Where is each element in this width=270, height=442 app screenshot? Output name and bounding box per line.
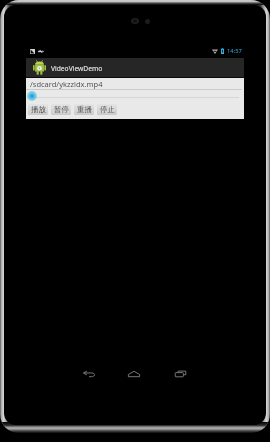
button[interactable]: 暂停 — [51, 104, 71, 115]
staticText: 停止 — [100, 105, 115, 114]
button[interactable]: 播放 — [28, 104, 48, 115]
staticText: /sdcard/ykzzldx.mp4 — [30, 79, 103, 89]
staticText: 14:57 — [227, 47, 242, 55]
staticText: VideoViewDemo — [51, 64, 103, 73]
staticText: 播放 — [31, 105, 46, 114]
button[interactable]: 停止 — [97, 104, 117, 115]
staticText: 暂停 — [54, 105, 69, 114]
button[interactable]: Back — [75, 362, 103, 385]
staticText: 重播 — [77, 105, 92, 114]
button[interactable]: Recent apps — [166, 362, 194, 385]
button[interactable]: Home — [120, 362, 148, 385]
button[interactable]: 重播 — [74, 104, 94, 115]
